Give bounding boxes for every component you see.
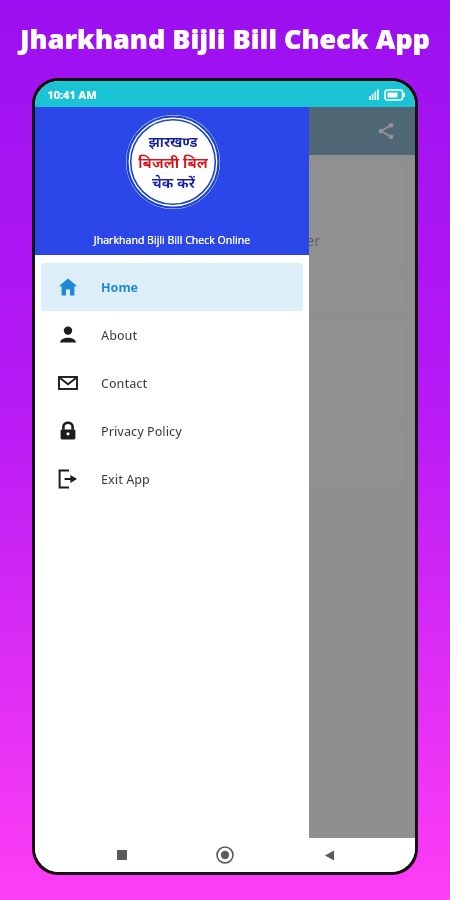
staticText: Check Bill By Mobile Number — [130, 231, 320, 250]
button[interactable]: Home — [41, 263, 303, 311]
staticText: चेक करें — [152, 173, 195, 192]
button[interactable]: इस बटन दबाकर इस एप को शेयर बढ़ाएं — [45, 429, 405, 485]
button[interactable]: Back — [312, 838, 346, 872]
staticText: Jharkhand Bijli Bill Check App — [20, 20, 430, 57]
staticText: बिजली बिल — [138, 152, 208, 172]
staticText: Privacy Policy — [101, 423, 182, 440]
button[interactable]: Exit App — [41, 455, 303, 503]
button[interactable]: Home — [208, 838, 242, 872]
staticText: Jharkhand Bijli Bill Check Online — [35, 233, 309, 247]
staticText: Home — [101, 279, 139, 296]
button[interactable]: Privacy Policy — [41, 407, 303, 455]
staticText: 10:41 AM — [47, 87, 97, 102]
button[interactable] — [45, 275, 405, 313]
button[interactable]: Share App — [45, 321, 405, 421]
staticText: Contact — [101, 375, 148, 392]
button[interactable]: About — [41, 311, 303, 359]
staticText: Exit App — [101, 471, 150, 488]
staticText: About — [101, 327, 138, 344]
button[interactable]: Contact — [41, 359, 303, 407]
staticText: इस बटन दबाकर इस एप को शेयर बढ़ाएं — [140, 449, 310, 465]
button[interactable]: Check Bill By Mobile Number — [45, 163, 405, 267]
button[interactable]: Share — [371, 116, 401, 146]
staticText: झारखण्ड — [148, 132, 198, 151]
button[interactable]: Recents — [105, 838, 139, 872]
button[interactable] — [35, 107, 415, 838]
